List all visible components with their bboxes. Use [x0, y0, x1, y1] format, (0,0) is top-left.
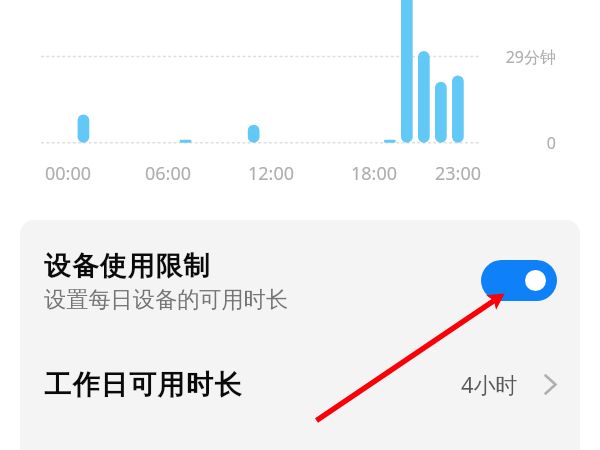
staticText: 12:00 [221, 161, 321, 186]
staticText: 0 [456, 132, 556, 154]
staticText: 29分钟 [456, 46, 556, 68]
staticText: 设备使用限制 [44, 249, 212, 282]
button[interactable]: 设备使用限制开关 [481, 260, 557, 301]
staticText: 设置每日设备的可用时长 [44, 286, 289, 314]
staticText: 18:00 [324, 161, 424, 186]
button[interactable]: 设备使用限制 [20, 220, 580, 342]
staticText: 00:00 [18, 161, 118, 186]
staticText: 23:00 [408, 161, 508, 186]
staticText: 工作日可用时长 [44, 368, 461, 402]
button[interactable]: 工作日可用时长 [20, 345, 580, 425]
staticText: 06:00 [118, 161, 218, 186]
staticText: 4小时 [461, 369, 518, 399]
